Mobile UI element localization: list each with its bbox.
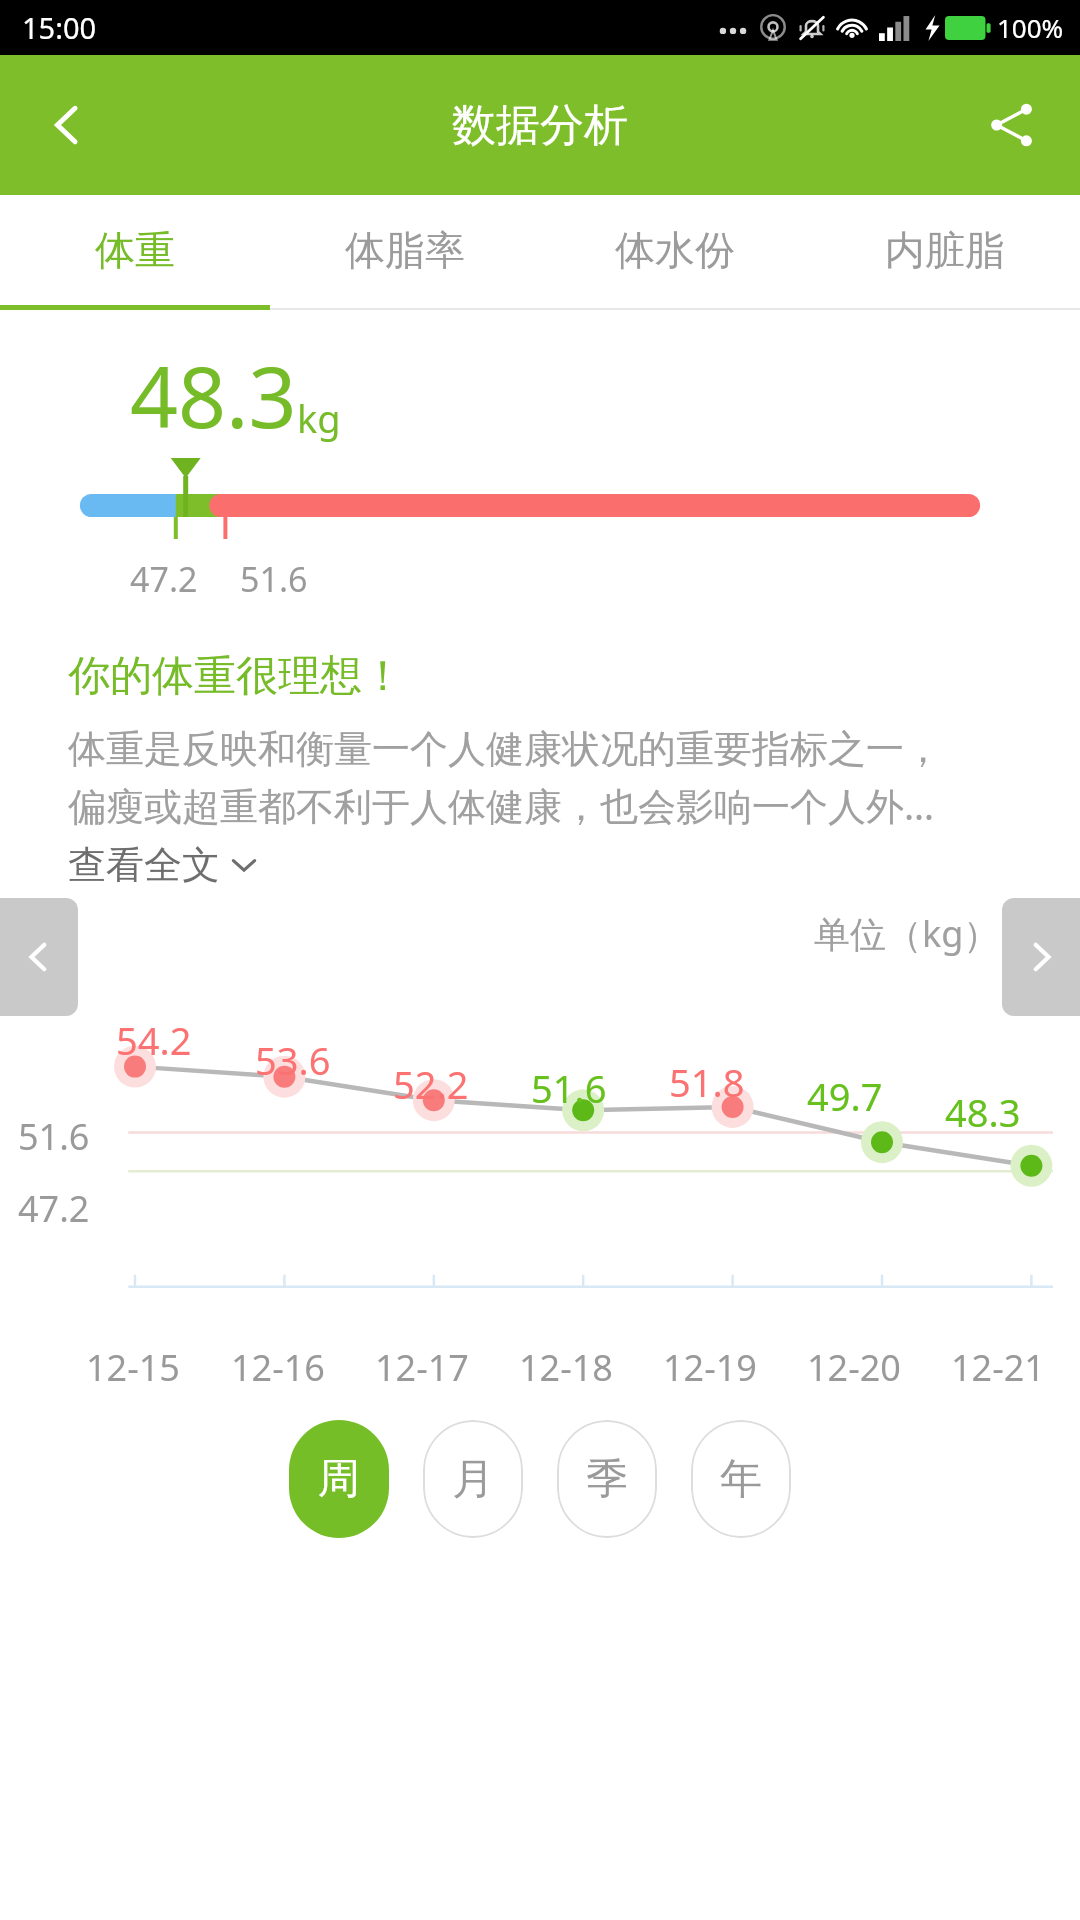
staticText: 年: [720, 1453, 762, 1506]
staticText: 你的体重很理想！: [68, 650, 404, 703]
staticText: 单位（kg）: [814, 909, 1000, 958]
button[interactable]: 体脂率: [270, 195, 540, 305]
staticText: 48.3: [945, 1086, 1021, 1138]
staticText: 12-17: [375, 1343, 469, 1392]
staticText: 12-20: [807, 1343, 901, 1392]
button[interactable]: Previous: [0, 898, 78, 1016]
staticText: 51.6: [531, 1062, 607, 1114]
staticText: 100%: [997, 10, 1064, 45]
staticText: 内脏脂: [885, 225, 1005, 275]
staticText: 月: [452, 1453, 494, 1506]
staticText: 体脂率: [345, 225, 465, 275]
staticText: 12-18: [519, 1343, 613, 1392]
staticText: 51.6: [240, 556, 308, 602]
staticText: 12-15: [86, 1343, 180, 1392]
staticText: 51.6: [18, 1112, 90, 1161]
staticText: 数据分析: [452, 98, 628, 153]
staticText: 15:00: [22, 8, 97, 47]
staticText: 体水份: [615, 225, 735, 275]
staticText: 51.8: [669, 1056, 745, 1108]
button[interactable]: 周: [289, 1420, 389, 1538]
staticText: 12-19: [663, 1343, 757, 1392]
button[interactable]: Back: [22, 79, 114, 171]
staticText: 体重是反映和衡量一个人健康状况的重要指标之一，: [68, 725, 942, 773]
staticText: 12-21: [951, 1343, 1045, 1392]
button[interactable]: 体重: [0, 195, 270, 305]
button[interactable]: 季: [557, 1420, 657, 1538]
staticText: 53.6: [255, 1034, 331, 1086]
button[interactable]: 体水份: [540, 195, 810, 305]
staticText: 查看全文: [68, 841, 220, 889]
staticText: 季: [586, 1453, 628, 1506]
staticText: 48.3: [130, 338, 297, 452]
button[interactable]: 查看全文: [68, 841, 258, 889]
staticText: 偏瘦或超重都不利于人体健康，也会影响一个人外…: [68, 779, 935, 831]
button[interactable]: 月: [423, 1420, 523, 1538]
staticText: kg: [297, 392, 341, 444]
staticText: 49.7: [807, 1070, 883, 1122]
button[interactable]: Share: [966, 79, 1058, 171]
button[interactable]: Next: [1002, 898, 1080, 1016]
staticText: 体重: [95, 225, 175, 275]
staticText: 47.2: [18, 1184, 90, 1233]
staticText: 周: [318, 1453, 360, 1506]
staticText: 52.2: [393, 1058, 469, 1110]
staticText: 54.2: [116, 1014, 192, 1066]
button[interactable]: 年: [691, 1420, 791, 1538]
staticText: 47.2: [130, 556, 198, 602]
button[interactable]: 内脏脂: [810, 195, 1080, 305]
staticText: 12-16: [231, 1343, 325, 1392]
